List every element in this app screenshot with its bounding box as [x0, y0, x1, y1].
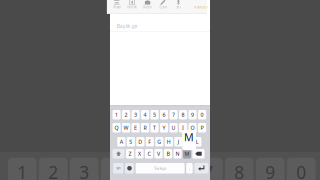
- staticText: E: [134, 124, 137, 131]
- button[interactable]: A: [117, 137, 125, 146]
- staticText: 8: [234, 161, 244, 180]
- button[interactable]: 9: [188, 110, 197, 119]
- button[interactable]: O: [188, 123, 197, 132]
- button[interactable]: 5: [150, 110, 159, 119]
- staticText: 0: [201, 111, 204, 118]
- button[interactable]: 0: [198, 110, 206, 119]
- button[interactable]: L: [193, 137, 201, 146]
- staticText: 5: [141, 161, 151, 180]
- staticText: K: [186, 138, 189, 145]
- button[interactable]: Düzen: [140, 0, 155, 14]
- staticText: 6: [172, 161, 182, 180]
- staticText: 3: [134, 111, 137, 118]
- staticText: 0: [296, 161, 306, 180]
- button[interactable]: 2: [122, 110, 130, 119]
- staticText: Y: [163, 124, 166, 131]
- staticText: H: [167, 138, 171, 145]
- staticText: R: [144, 124, 147, 131]
- button[interactable]: K: [184, 137, 192, 146]
- staticText: Hizala: [113, 5, 120, 9]
- button[interactable]: D: [136, 137, 144, 146]
- staticText: 6: [163, 111, 166, 118]
- staticText: 9: [265, 161, 275, 180]
- staticText: J: [178, 138, 179, 145]
- button[interactable]: Önemli: [124, 0, 140, 14]
- button[interactable]: 4: [141, 110, 149, 119]
- button[interactable]: E: [131, 123, 140, 132]
- staticText: KAYDET: [194, 4, 208, 10]
- staticText: V: [157, 150, 160, 157]
- button[interactable]: R: [141, 123, 149, 132]
- staticText: Q: [115, 124, 119, 131]
- button[interactable]: X: [135, 149, 144, 158]
- button[interactable]: Shift: [112, 149, 125, 158]
- staticText: 8: [182, 111, 185, 118]
- staticText: X: [138, 150, 141, 157]
- staticText: T: [153, 124, 156, 131]
- staticText: A: [120, 138, 123, 145]
- staticText: D: [138, 138, 142, 145]
- staticText: S: [129, 138, 132, 145]
- button[interactable]: V: [154, 149, 163, 158]
- button[interactable]: 8: [179, 110, 187, 119]
- staticText: Başlık gir: [116, 22, 137, 30]
- staticText: 4: [110, 161, 120, 180]
- staticText: Önemli: [127, 5, 137, 9]
- staticText: F: [148, 138, 151, 145]
- button[interactable]: .: [186, 163, 193, 173]
- button[interactable]: T: [150, 123, 159, 132]
- staticText: N: [175, 150, 179, 157]
- staticText: .: [189, 166, 190, 171]
- button[interactable]: M: [183, 149, 191, 158]
- staticText: Türkçe: [154, 166, 166, 171]
- button[interactable]: Ses: [171, 0, 186, 14]
- button[interactable]: Z: [126, 149, 134, 158]
- button[interactable]: C: [145, 149, 153, 158]
- button[interactable]: P: [198, 123, 206, 132]
- button[interactable]: J: [174, 137, 182, 146]
- button[interactable]: F: [146, 137, 154, 146]
- button[interactable]: Sym: [113, 163, 123, 173]
- button[interactable]: Çizim: [155, 0, 171, 14]
- staticText: Sym: [116, 166, 120, 170]
- staticText: 3: [79, 161, 89, 180]
- staticText: O: [191, 124, 195, 131]
- staticText: 2: [125, 111, 128, 118]
- button[interactable]: 6: [160, 110, 168, 119]
- button[interactable]: U: [169, 123, 178, 132]
- staticText: Çizim: [159, 5, 166, 9]
- button[interactable]: N: [173, 149, 182, 158]
- button[interactable]: Delete: [192, 149, 204, 158]
- button[interactable]: 1: [112, 110, 121, 119]
- staticText: U: [172, 124, 176, 131]
- staticText: L: [196, 138, 199, 145]
- staticText: P: [201, 124, 204, 131]
- button[interactable]: G: [155, 137, 163, 146]
- button[interactable]: KAYDET: [192, 1, 211, 13]
- button[interactable]: 7: [169, 110, 178, 119]
- staticText: M: [184, 150, 189, 157]
- button[interactable]: S: [127, 137, 135, 146]
- staticText: 2: [48, 161, 58, 180]
- button[interactable]: Hizala: [109, 0, 124, 14]
- button[interactable]: Return: [194, 163, 208, 173]
- button[interactable]: B: [164, 149, 172, 158]
- staticText: 1: [115, 111, 118, 118]
- button[interactable]: Y: [160, 123, 168, 132]
- button[interactable]: W: [122, 123, 130, 132]
- button[interactable]: H: [165, 137, 173, 146]
- staticText: 5: [153, 111, 156, 118]
- staticText: I: [182, 124, 184, 131]
- staticText: Ses: [176, 5, 180, 9]
- button[interactable]: I: [179, 123, 187, 132]
- button[interactable]: 3: [131, 110, 140, 119]
- button[interactable]: Emoji keyboard: [125, 163, 134, 173]
- staticText: G: [157, 138, 161, 145]
- staticText: B: [166, 150, 169, 157]
- button[interactable]: Q: [112, 123, 121, 132]
- staticText: 1: [17, 161, 27, 180]
- staticText: 4: [144, 111, 147, 118]
- staticText: 9: [191, 111, 194, 118]
- staticText: 7: [203, 161, 213, 180]
- button[interactable]: Türkçe: [136, 163, 185, 173]
